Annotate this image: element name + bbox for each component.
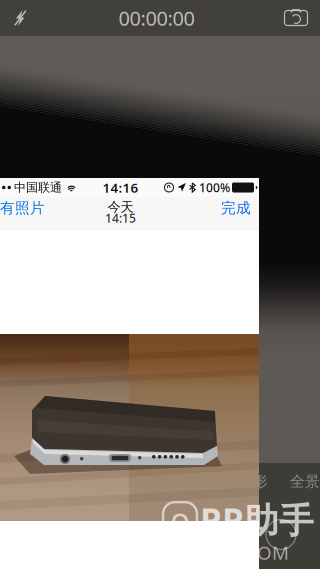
button[interactable]: 正方形 — [223, 472, 268, 490]
button[interactable]: Photo library — [24, 519, 54, 549]
staticText: 延时摄影 — [0, 463, 45, 499]
staticText: 25PP.COM — [200, 540, 289, 565]
button[interactable]: 照片 — [171, 472, 201, 490]
button[interactable]: 视频 — [119, 472, 149, 490]
button[interactable]: 延时摄影 — [0, 463, 45, 499]
staticText: 照片 — [171, 472, 201, 490]
staticText: 14:15 — [105, 210, 136, 226]
staticText: 有照片 — [0, 199, 45, 217]
button[interactable]: 完成 — [221, 195, 251, 221]
staticText: 100% — [199, 179, 230, 195]
staticText: PP助手 — [200, 496, 314, 542]
staticText: 视频 — [119, 472, 149, 490]
button[interactable]: 有照片 — [0, 195, 45, 221]
staticText: 全景 — [290, 472, 320, 490]
staticText: 正方形 — [223, 472, 268, 490]
button[interactable]: Flash off — [6, 0, 35, 35]
staticText: 00:00:00 — [118, 5, 194, 31]
button[interactable]: 全景 — [290, 472, 320, 490]
button[interactable]: Switch camera — [278, 0, 314, 36]
button[interactable]: Filters — [266, 519, 296, 549]
button[interactable]: Record — [135, 509, 185, 559]
staticText: 中国联通 — [14, 180, 62, 195]
staticText: 完成 — [221, 199, 251, 217]
staticText: 慢动作 — [67, 463, 97, 499]
staticText: ρ — [169, 496, 190, 542]
staticText: 14:16 — [102, 179, 138, 196]
button[interactable]: 慢动作 — [67, 463, 97, 499]
staticText: 今天 — [107, 199, 133, 215]
